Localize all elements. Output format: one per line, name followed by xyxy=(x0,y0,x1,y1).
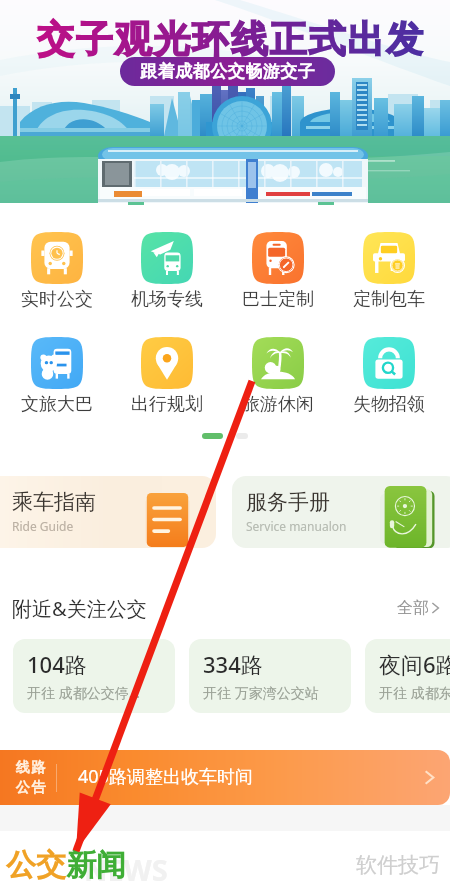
staticText: 服务手册 xyxy=(246,489,330,515)
button[interactable]: 夜间6路 xyxy=(365,639,450,713)
button[interactable]: 定制包车 xyxy=(333,232,444,311)
staticText: 跟着成都公交畅游交子 xyxy=(140,61,315,82)
staticText: 软件技巧 xyxy=(356,852,440,878)
button[interactable]: 全部 xyxy=(394,593,443,623)
staticText: 开往 万家湾公交站 xyxy=(203,683,319,702)
button[interactable]: Promotion banner xyxy=(0,0,450,203)
staticText: 机场专线 xyxy=(131,288,203,311)
button[interactable]: 实时公交 xyxy=(2,232,112,311)
button[interactable]: 线路 xyxy=(0,750,450,805)
staticText: 附近&关注公交 xyxy=(12,595,147,622)
staticText: 405路调整出收车时间 xyxy=(78,764,253,789)
staticText: 开往 成都东站公交站 xyxy=(379,683,450,702)
button[interactable]: 巴士定制 xyxy=(222,232,333,311)
button[interactable]: 104路 xyxy=(13,639,175,713)
staticText: NEWS xyxy=(84,850,168,889)
staticText: 交子观光环线正式出发 xyxy=(36,16,424,63)
button[interactable]: 失物招领 xyxy=(333,337,444,416)
staticText: 出行规划 xyxy=(131,393,203,416)
staticText: 线路 xyxy=(15,759,46,777)
staticText: 公交 xyxy=(6,846,66,884)
button[interactable]: 出行规划 xyxy=(112,337,222,416)
staticText: 文旅大巴 xyxy=(21,393,93,416)
staticText: 旅游休闲 xyxy=(242,393,314,416)
staticText: 104路 xyxy=(27,649,87,679)
staticText: Ride Guide xyxy=(12,518,74,534)
staticText: 全部 xyxy=(397,598,429,618)
staticText: 乘车指南 xyxy=(12,489,96,515)
staticText: Service manualon xyxy=(246,518,347,534)
staticText: 公告 xyxy=(15,779,46,797)
staticText: 巴士定制 xyxy=(242,288,314,311)
staticText: 定制包车 xyxy=(353,288,425,311)
button[interactable]: 机场专线 xyxy=(112,232,222,311)
staticText: 实时公交 xyxy=(21,288,93,311)
button[interactable]: 旅游休闲 xyxy=(222,337,333,416)
staticText: 失物招领 xyxy=(353,393,425,416)
staticText: 334路 xyxy=(203,649,263,679)
staticText: 夜间6路 xyxy=(379,649,450,679)
staticText: 新闻 xyxy=(66,846,126,884)
button[interactable]: 服务手册 xyxy=(232,476,450,548)
button[interactable]: 334路 xyxy=(189,639,351,713)
button[interactable]: 乘车指南 xyxy=(0,476,216,548)
staticText: 开往 成都公交停… xyxy=(27,683,140,702)
button[interactable]: 文旅大巴 xyxy=(2,337,112,416)
button[interactable]: 公交 xyxy=(6,846,126,884)
